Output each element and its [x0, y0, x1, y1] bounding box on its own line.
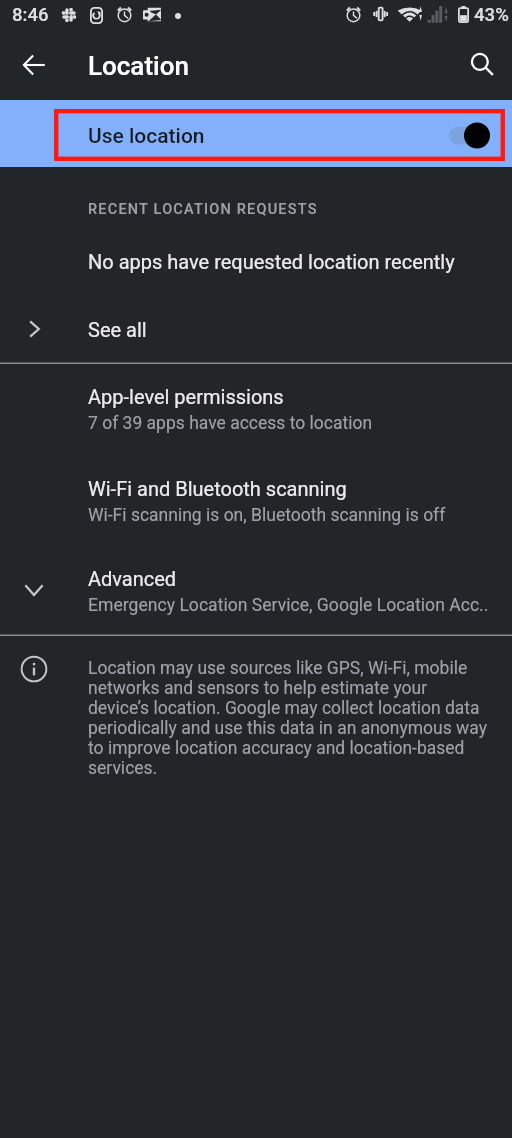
button[interactable]: Back — [10, 41, 58, 89]
staticText: 7 of 39 apps have access to location — [88, 413, 373, 434]
staticText: Wi-Fi and Bluetooth scanning — [88, 477, 347, 500]
staticText: Advanced — [88, 567, 177, 590]
staticText: Wi-Fi scanning is on, Bluetooth scanning… — [88, 505, 446, 526]
button[interactable]: Use location toggle, on — [443, 114, 496, 156]
staticText: Emergency Location Service, Google Locat… — [88, 595, 489, 616]
button[interactable]: Advanced — [0, 567, 512, 629]
staticText: Location — [88, 51, 189, 81]
staticText: 8:46 — [12, 4, 49, 26]
staticText: 43% — [474, 4, 509, 26]
button[interactable]: Wi-Fi and Bluetooth scanning — [0, 477, 512, 539]
button[interactable]: Use location — [0, 100, 512, 167]
staticText: See all — [88, 318, 147, 341]
staticText: Use location — [88, 124, 205, 149]
button[interactable]: Search — [458, 40, 506, 88]
staticText: Location may use sources like GPS, Wi-Fi… — [88, 658, 492, 778]
button[interactable]: See all — [0, 306, 512, 352]
staticText: App-level permissions — [88, 385, 284, 408]
button[interactable]: App-level permissions — [0, 385, 512, 447]
staticText: No apps have requested location recently — [88, 250, 455, 273]
staticText: RECENT LOCATION REQUESTS — [88, 201, 318, 218]
